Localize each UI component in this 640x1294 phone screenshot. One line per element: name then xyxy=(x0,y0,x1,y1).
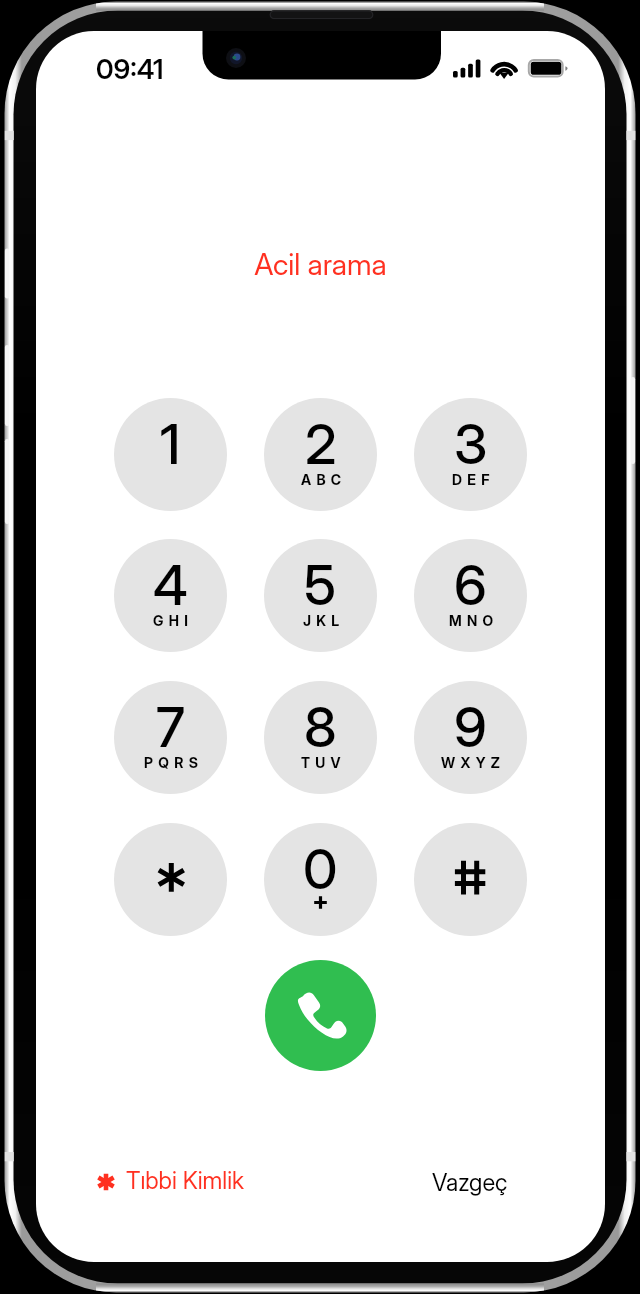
button[interactable]: 6 MNO xyxy=(414,539,527,652)
staticText: Tıbbi Kimlik xyxy=(126,1166,245,1195)
staticText: 3 xyxy=(454,411,488,478)
staticText: PQRS xyxy=(144,754,204,771)
button[interactable]: 3 DEF xyxy=(414,398,527,511)
staticText: GHI xyxy=(153,612,194,629)
button[interactable]: 7 PQRS xyxy=(114,681,227,794)
button[interactable]: 0 plus xyxy=(264,823,377,936)
staticText: 1 xyxy=(160,411,181,478)
button[interactable]: 8 TUV xyxy=(264,681,377,794)
staticText: Vazgeç xyxy=(432,1168,508,1197)
button[interactable]: Tıbbi Kimlik xyxy=(93,1162,255,1198)
button[interactable]: Acil arama xyxy=(36,247,605,282)
staticText: MNO xyxy=(449,612,499,629)
staticText: 09:41 xyxy=(96,52,164,85)
button[interactable]: 9 WXYZ xyxy=(414,681,527,794)
staticText: 7 xyxy=(156,694,185,761)
staticText: DEF xyxy=(452,471,495,488)
button[interactable]: 1 xyxy=(114,398,227,511)
staticText: 9 xyxy=(454,694,487,761)
staticText: 5 xyxy=(304,552,337,619)
button[interactable]: Call xyxy=(265,960,376,1071)
button[interactable]: 4 GHI xyxy=(114,539,227,652)
button[interactable]: 2 ABC xyxy=(264,398,377,511)
staticText: 6 xyxy=(454,552,487,619)
staticText: 8 xyxy=(304,694,337,761)
button[interactable]: hash xyxy=(414,823,527,936)
staticText: ABC xyxy=(301,471,347,488)
staticText: TUV xyxy=(301,754,346,771)
staticText: 2 xyxy=(305,411,337,478)
staticText: WXYZ xyxy=(441,754,506,771)
staticText: JKL xyxy=(303,612,345,629)
staticText: 4 xyxy=(153,552,188,619)
button[interactable]: Vazgeç xyxy=(425,1162,517,1198)
button[interactable]: star xyxy=(114,823,227,936)
staticText: 0 xyxy=(303,836,338,903)
button[interactable]: 5 JKL xyxy=(264,539,377,652)
